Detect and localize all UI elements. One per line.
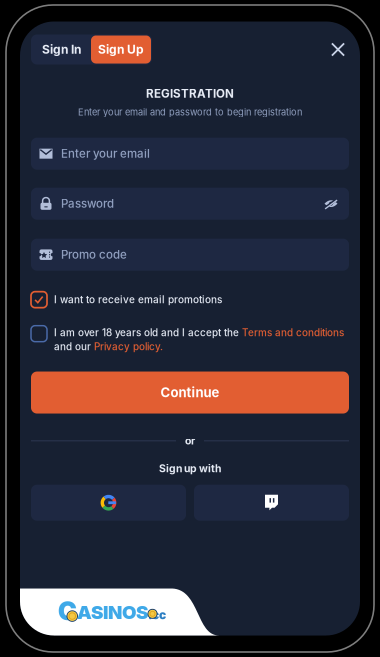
staticText: I am over 18 years old and I accept the [54,327,242,339]
staticText: Continue [160,385,219,400]
staticText: Password [61,197,114,211]
staticText: ASINOS [77,601,148,624]
button[interactable]: Sign up with Google [31,485,186,521]
button[interactable]: Continue [31,371,349,413]
button[interactable]: Close [327,34,349,64]
button[interactable]: Sign up with Twitch [194,485,349,521]
staticText: REGISTRATION [146,86,234,100]
button[interactable]: Password [31,188,349,220]
button[interactable]: I am over 18 years old and I accept the [31,326,349,353]
staticText: .cc [148,607,166,622]
button[interactable]: Promo code [31,239,349,271]
staticText: Promo code [61,248,127,262]
staticText: or [185,434,195,447]
button[interactable]: I want to receive email promotions [31,292,349,308]
button[interactable]: Enter your email [31,138,349,170]
staticText: Terms and conditions [242,327,344,339]
button[interactable]: Sign In [32,35,91,63]
button[interactable]: Sign Up [91,35,151,63]
staticText: Sign Up [98,42,144,57]
staticText: Enter your email [61,147,150,161]
staticText: Sign up with [159,462,221,475]
staticText: Privacy policy. [94,341,163,352]
staticText: Enter your email and password to begin r… [78,106,302,118]
staticText: Sign In [42,42,81,57]
staticText: C [58,596,77,626]
staticText: I want to receive email promotions [54,294,222,306]
staticText: and our [54,341,94,352]
